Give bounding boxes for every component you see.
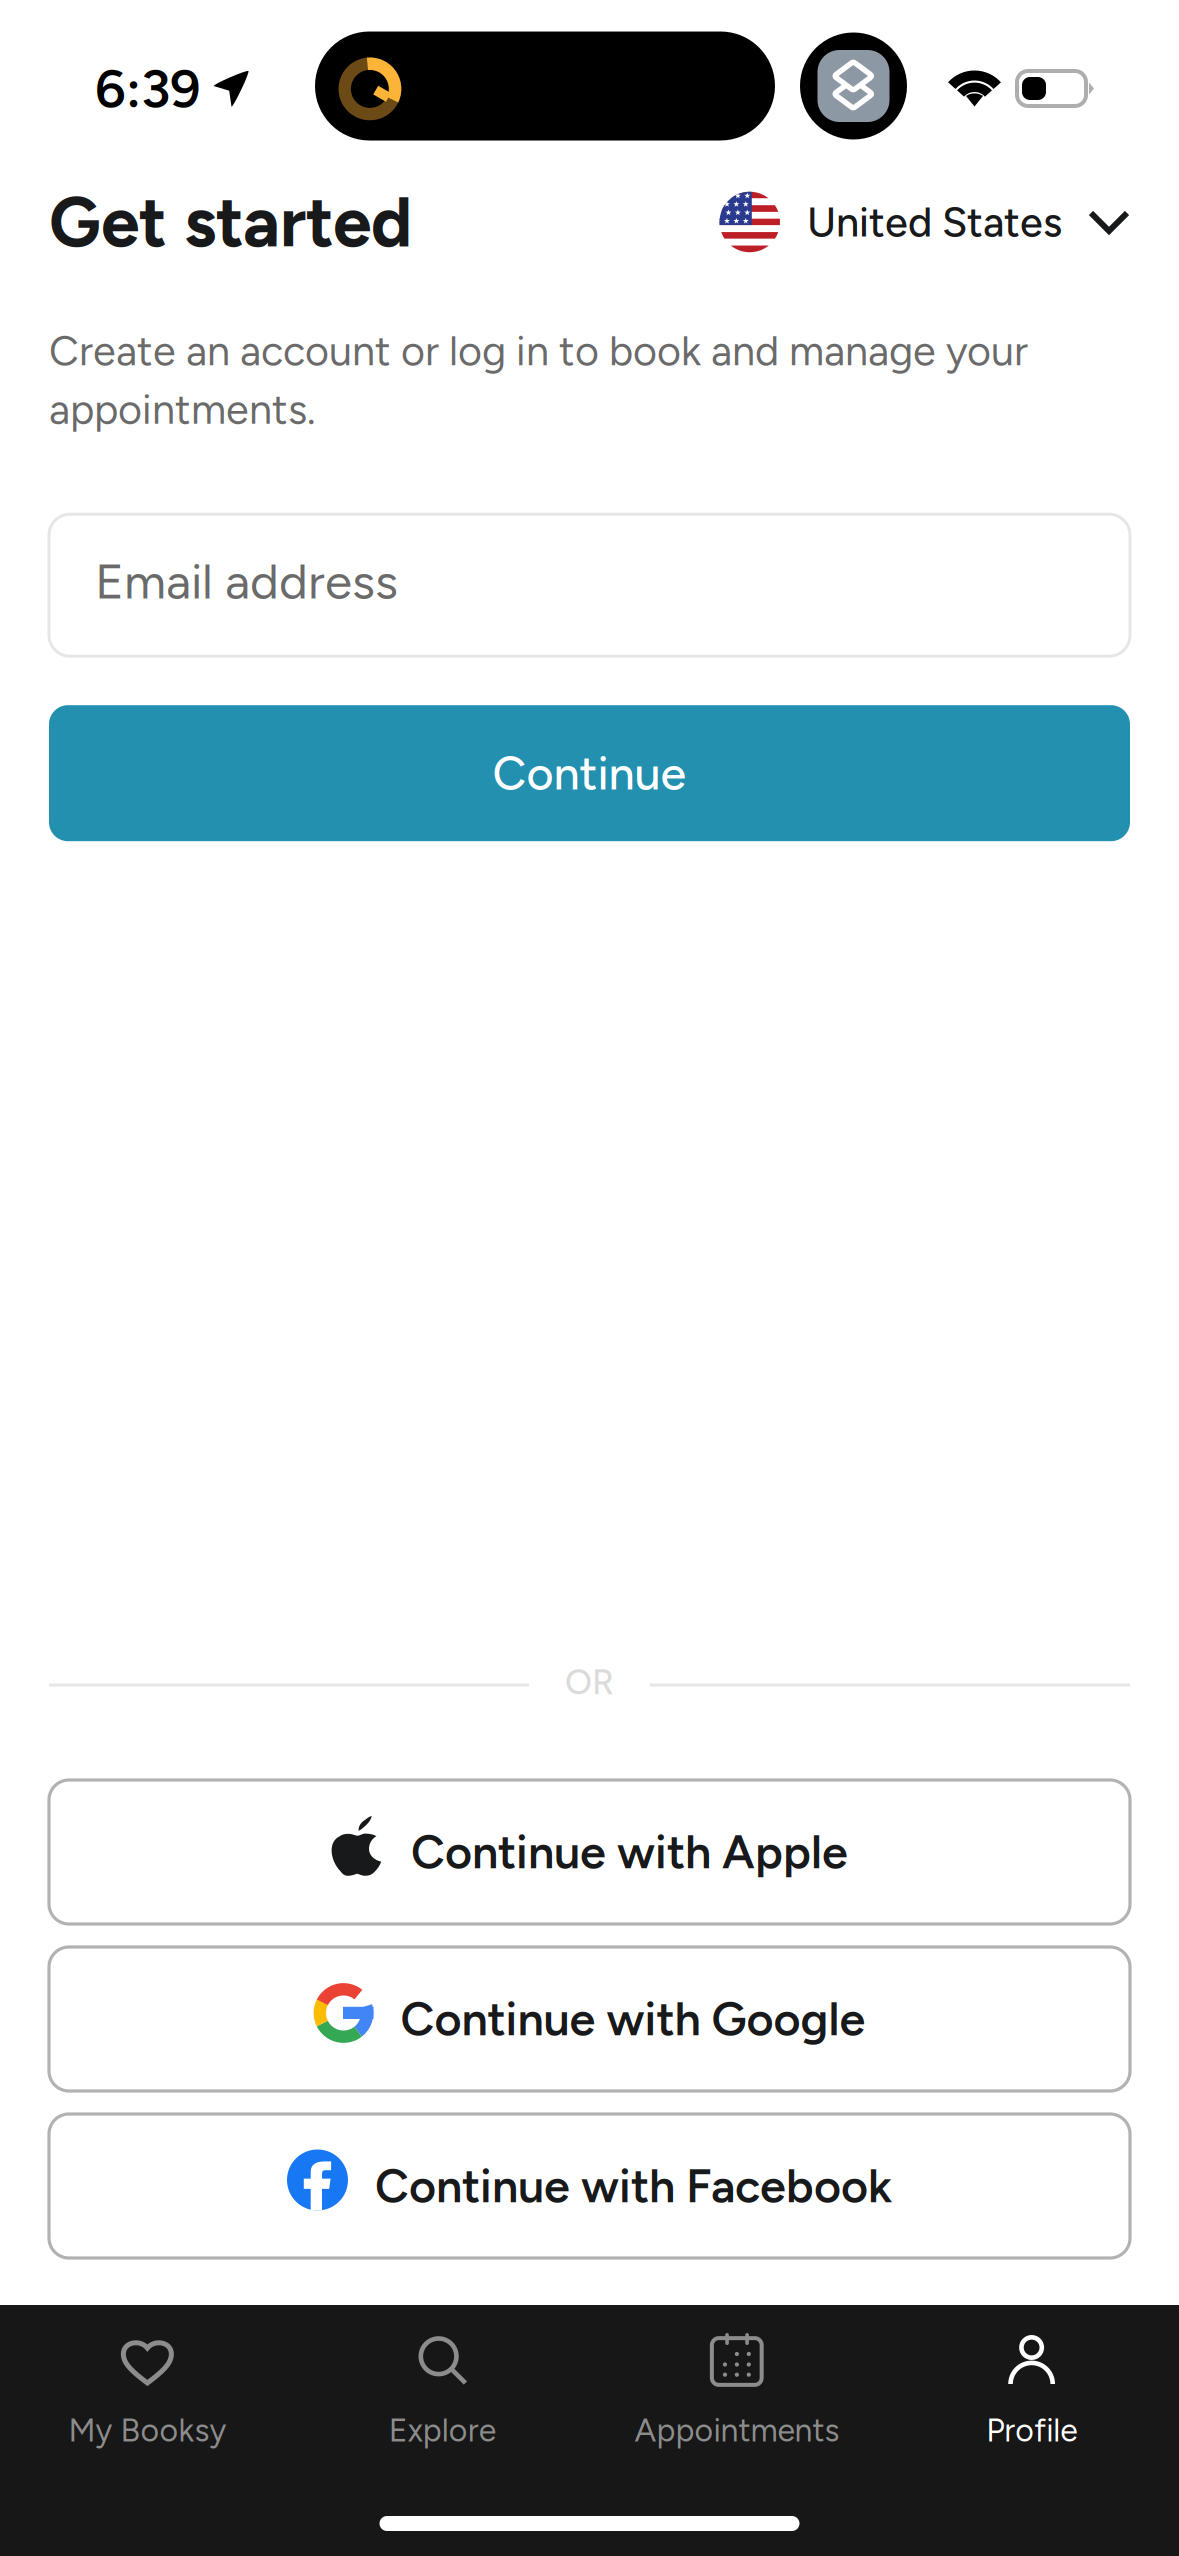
button[interactable]: Continue with Facebook xyxy=(49,2114,1130,2258)
staticText: 6:39 xyxy=(95,56,201,120)
button[interactable]: My Booksy xyxy=(0,2305,295,2480)
button[interactable]: Continue xyxy=(49,705,1130,841)
staticText: Continue with Google xyxy=(400,1991,865,2047)
staticText: Continue with Facebook xyxy=(375,2158,892,2214)
staticText: Profile xyxy=(986,2411,1077,2449)
staticText: My Booksy xyxy=(68,2411,226,2449)
staticText: United States xyxy=(807,197,1062,247)
button[interactable]: Appointments xyxy=(589,2305,884,2480)
staticText: OR xyxy=(565,1661,614,1703)
staticText: Email address xyxy=(95,552,398,611)
staticText: Continue xyxy=(492,745,686,801)
staticText: Create an account or log in to book and … xyxy=(49,326,1028,376)
staticText: Continue with Apple xyxy=(411,1824,848,1880)
button[interactable]: Explore xyxy=(295,2305,590,2480)
button[interactable]: Email address xyxy=(49,514,1130,656)
staticText: appointments. xyxy=(49,385,316,434)
button[interactable]: Profile xyxy=(884,2305,1179,2480)
button[interactable]: Continue with Apple xyxy=(49,1780,1130,1924)
staticText: Get started xyxy=(49,180,412,264)
button[interactable]: Continue with Google xyxy=(49,1947,1130,2091)
button[interactable]: United States xyxy=(719,192,1130,252)
staticText: Explore xyxy=(389,2411,496,2449)
staticText: Appointments xyxy=(634,2411,839,2449)
